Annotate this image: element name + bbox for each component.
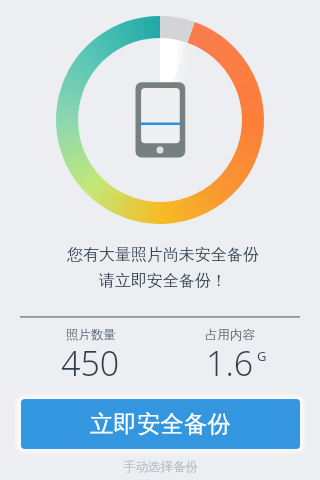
button[interactable]: Backup progress — [56, 16, 264, 224]
button[interactable]: 照片数量 — [20, 327, 160, 390]
staticText: 照片数量 — [66, 327, 116, 343]
staticText: 请立即安全备份！ — [99, 271, 227, 291]
staticText: 1.6 — [206, 340, 254, 386]
staticText: G — [257, 347, 267, 365]
staticText: 立即安全备份 — [90, 409, 231, 439]
button[interactable]: 占用内容 — [160, 327, 300, 390]
staticText: 450 — [61, 340, 120, 386]
staticText: 手动选择备份 — [123, 459, 198, 475]
button[interactable]: 手动选择备份 — [113, 457, 208, 477]
staticText: 您有大量照片尚未安全备份 — [67, 245, 259, 265]
button[interactable]: 立即安全备份 — [21, 399, 300, 449]
staticText: 占用内容 — [205, 327, 255, 343]
